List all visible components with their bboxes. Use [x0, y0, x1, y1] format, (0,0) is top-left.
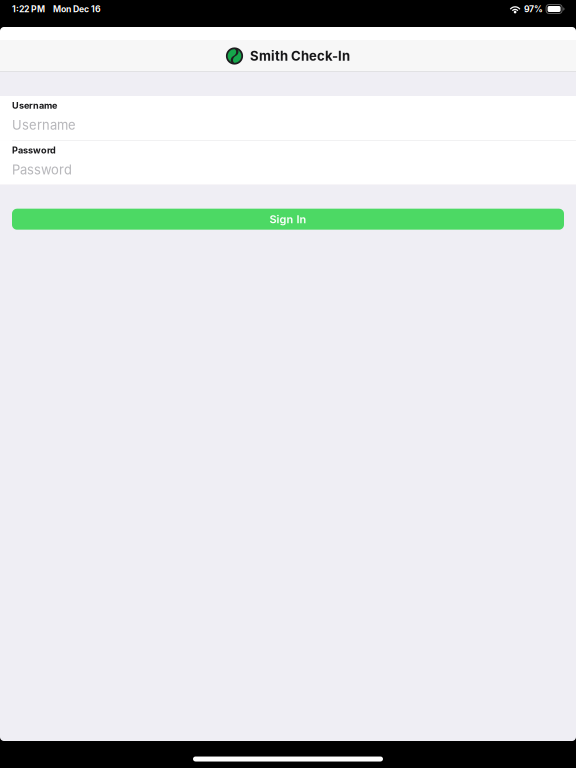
staticText: Password	[12, 145, 56, 156]
staticText: 97%	[524, 4, 543, 14]
staticText: Username	[12, 117, 76, 133]
staticText: Sign In	[269, 213, 306, 226]
button[interactable]: Username	[0, 96, 576, 140]
staticText: Password	[12, 162, 72, 177]
staticText: 1:22 PM	[12, 4, 45, 14]
button[interactable]: Password	[0, 141, 576, 185]
staticText: Mon Dec 16	[53, 4, 101, 14]
button[interactable]: Sign In	[12, 209, 564, 230]
staticText: Smith Check-In	[250, 48, 350, 64]
staticText: Username	[12, 100, 57, 111]
